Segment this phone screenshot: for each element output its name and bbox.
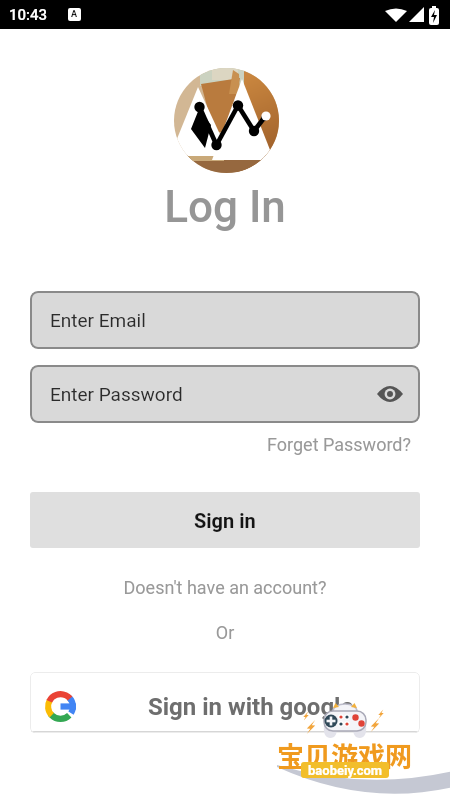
staticText: Or <box>0 622 450 643</box>
staticText: Sign in <box>194 509 256 532</box>
staticText: Enter Password <box>50 383 183 405</box>
staticText: Enter Email <box>50 309 146 331</box>
button[interactable]: Sign in with google <box>30 672 420 733</box>
staticText: A <box>71 9 78 20</box>
button[interactable]: Enter Email <box>30 291 420 349</box>
button[interactable]: Forget Password? <box>0 434 411 455</box>
staticText: 宝贝游戏网 <box>277 736 412 775</box>
button[interactable]: Enter Password <box>30 365 420 423</box>
staticText: 10:43 <box>9 6 48 24</box>
staticText: Log In <box>0 181 450 233</box>
button[interactable]: Doesn't have an account? <box>0 577 450 598</box>
staticText: baobeiy.com <box>308 763 383 778</box>
staticText: Sign in with google <box>148 693 354 721</box>
button[interactable]: Sign in <box>30 492 420 548</box>
